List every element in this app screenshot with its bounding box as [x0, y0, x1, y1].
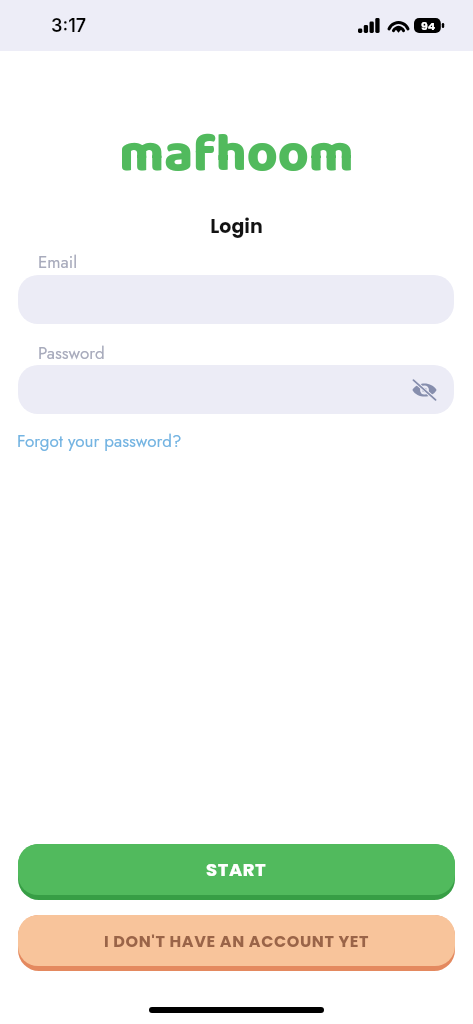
staticText: Password: [38, 341, 105, 366]
button[interactable]: START: [18, 844, 455, 900]
staticText: Forgot your password?: [17, 429, 182, 454]
button[interactable]: Show password: [18, 365, 454, 414]
staticText: 94: [421, 18, 436, 33]
staticText: mafhoom: [0, 113, 473, 198]
staticText: Email: [38, 250, 78, 275]
button[interactable]: Show password: [408, 374, 440, 406]
staticText: I DON'T HAVE AN ACCOUNT YET: [104, 930, 370, 952]
button[interactable]: Forgot your password?: [17, 429, 182, 454]
staticText: START: [206, 857, 267, 882]
button[interactable]: I DON'T HAVE AN ACCOUNT YET: [18, 915, 455, 971]
staticText: 3:17: [51, 15, 87, 37]
staticText: Login: [0, 213, 473, 240]
